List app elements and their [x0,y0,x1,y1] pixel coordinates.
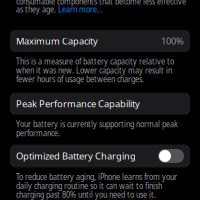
staticText: Maximum Capacity [16,35,98,47]
staticText: Your battery is currently supporting nor… [16,119,178,138]
staticText: To reduce battery aging, iPhone learns f… [16,171,177,200]
staticText: This is a measure of battery capacity re… [16,56,174,85]
button[interactable]: Maximum Capacity [0,30,200,52]
staticText: 100% [161,35,184,47]
button[interactable]: Optimized Battery Charging [0,144,200,167]
staticText: Peak Performance Capability [16,97,140,110]
button[interactable]: Learn more... [58,4,103,15]
staticText: Learn more... [58,4,103,15]
staticText: Optimized Battery Charging [16,150,136,162]
button[interactable]: Peak Performance Capability [0,93,200,115]
staticText: as they age. [16,4,58,15]
staticText: consumable components that become less e… [16,0,186,7]
